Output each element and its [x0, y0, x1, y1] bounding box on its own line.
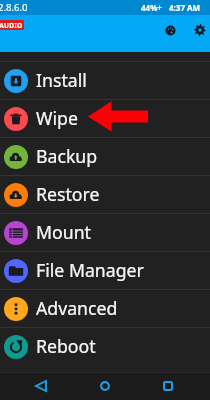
staticText: Install: [36, 68, 87, 92]
button[interactable]: Recents: [154, 372, 182, 400]
staticText: Restore: [36, 182, 100, 206]
button[interactable]: Reboot: [0, 327, 210, 365]
button[interactable]: Back: [27, 372, 55, 400]
button[interactable]: Home: [91, 372, 119, 400]
staticText: Mount: [36, 220, 91, 244]
staticText: Wipe: [36, 106, 78, 130]
staticText: 2.8.6.0: [0, 1, 28, 14]
staticText: File Manager: [36, 258, 144, 282]
button[interactable]: Theme: [158, 18, 182, 42]
button[interactable]: Mount: [0, 213, 210, 251]
button[interactable]: Settings: [188, 18, 210, 42]
staticText: Advanced: [36, 296, 118, 320]
button[interactable]: Install: [0, 61, 210, 99]
staticText: 4:37 AM: [169, 2, 201, 13]
button[interactable]: OLAUDIO: [0, 20, 24, 30]
staticText: Backup: [36, 144, 98, 168]
button[interactable]: Wipe: [0, 99, 210, 137]
button[interactable]: Restore: [0, 175, 210, 213]
staticText: Reboot: [36, 334, 96, 358]
staticText: OLAUDIO: [0, 21, 23, 30]
button[interactable]: Backup: [0, 137, 210, 175]
button[interactable]: File Manager: [0, 251, 210, 289]
button[interactable]: Advanced: [0, 289, 210, 327]
staticText: 44%+: [141, 2, 162, 13]
